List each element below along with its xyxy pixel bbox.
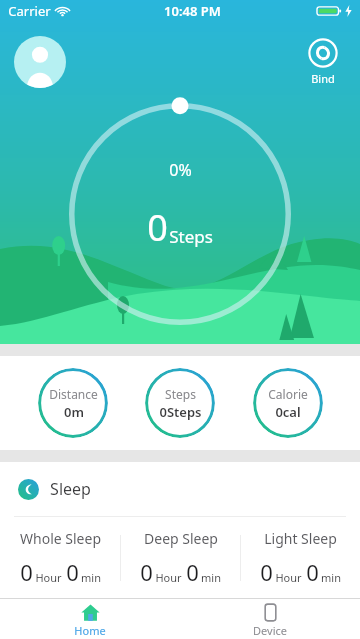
staticText: Sleep	[50, 478, 91, 500]
staticText: Hour	[275, 570, 302, 585]
staticText: Light Sleep	[264, 529, 337, 548]
staticText: min	[81, 570, 101, 585]
button[interactable]: Bind device	[304, 34, 342, 90]
button[interactable]: Light Sleep	[241, 529, 360, 587]
staticText: Steps	[165, 386, 196, 402]
staticText: 0	[20, 557, 33, 587]
button[interactable]: Distance	[38, 368, 108, 438]
button[interactable]: Device	[180, 600, 360, 638]
staticText: Whole Sleep	[20, 529, 101, 548]
staticText: Deep Sleep	[144, 529, 218, 548]
button[interactable]: Calorie	[253, 368, 323, 438]
staticText: 0	[260, 557, 273, 587]
button[interactable]: Sleep	[0, 462, 360, 516]
staticText: Steps	[169, 225, 213, 248]
staticText: Hour	[35, 570, 62, 585]
button[interactable]: Steps	[145, 368, 215, 438]
staticText: 0	[306, 557, 319, 587]
button[interactable]: Home	[0, 600, 180, 638]
staticText: Hour	[155, 570, 182, 585]
staticText: 10:48 PM	[164, 2, 221, 20]
staticText: Device	[253, 623, 287, 638]
staticText: Distance	[49, 386, 98, 402]
staticText: 0	[186, 557, 199, 587]
staticText: 0	[140, 557, 153, 587]
staticText: 0Steps	[159, 403, 202, 421]
button[interactable]: Profile	[14, 36, 66, 88]
staticText: Bind	[311, 71, 335, 86]
staticText: Home	[74, 623, 106, 638]
staticText: 0m	[64, 403, 84, 421]
staticText: Carrier	[8, 2, 51, 20]
button[interactable]: Deep Sleep	[121, 529, 240, 587]
staticText: min	[201, 570, 221, 585]
staticText: 0cal	[275, 403, 301, 421]
staticText: min	[321, 570, 341, 585]
staticText: 0	[66, 557, 79, 587]
staticText: Calorie	[268, 386, 308, 402]
staticText: 0	[147, 203, 168, 252]
button[interactable]: Whole Sleep	[0, 529, 120, 587]
staticText: 0%	[169, 159, 192, 181]
